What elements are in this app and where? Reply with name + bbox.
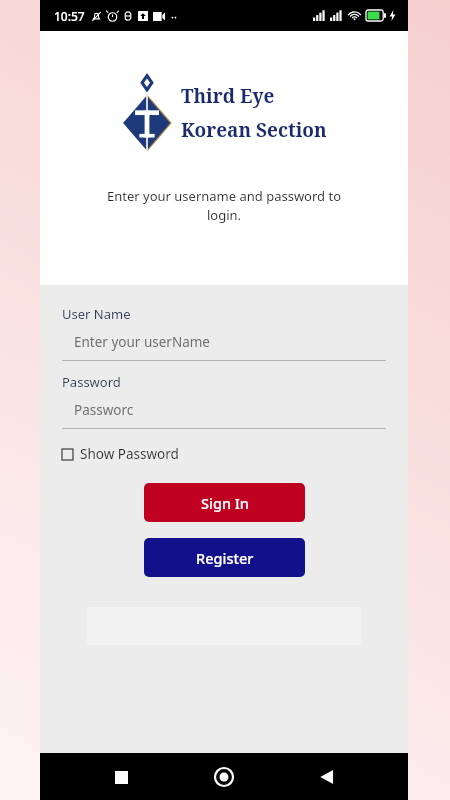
staticText: Korean Section xyxy=(181,117,327,143)
staticText: Show Password xyxy=(80,445,179,463)
staticText: Third Eye xyxy=(181,83,275,109)
button[interactable]: Sign In xyxy=(144,483,305,522)
staticText: Password xyxy=(62,373,121,391)
staticText: Enter your userName xyxy=(74,333,210,351)
staticText: Passworc xyxy=(74,401,134,419)
staticText: Sign In xyxy=(201,493,249,513)
staticText: User Name xyxy=(62,305,131,323)
button[interactable]: Password xyxy=(62,373,386,429)
button[interactable]: Home xyxy=(202,755,246,799)
staticText: ·· xyxy=(171,9,177,24)
staticText: 10:57 xyxy=(54,8,85,24)
staticText: Enter your username and password to logi… xyxy=(64,187,384,224)
button[interactable]: Back xyxy=(305,755,349,799)
button[interactable]: User Name xyxy=(62,305,386,361)
staticText: Register xyxy=(196,548,254,568)
button[interactable]: Recent apps xyxy=(99,755,143,799)
button[interactable]: Register xyxy=(144,538,305,577)
button[interactable]: Show Password xyxy=(62,443,179,465)
